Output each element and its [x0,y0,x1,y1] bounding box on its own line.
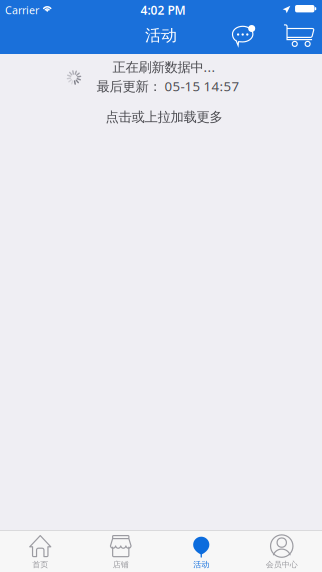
staticText: 点击或上拉加载更多 [105,109,222,125]
staticText: 会员中心 [266,560,298,569]
button[interactable]: 购物车 [278,19,322,52]
button[interactable]: 店铺 [80,530,161,572]
button[interactable]: 活动 [161,530,241,572]
staticText: 正在刷新数据中... [112,58,215,76]
staticText: 活动 [193,560,209,569]
staticText: 首页 [32,560,48,569]
staticText: Carrier [5,3,39,17]
button[interactable]: 会员中心 [241,530,322,572]
staticText: 4:02 PM [140,2,185,18]
staticText: 店铺 [113,560,129,569]
button[interactable]: 首页 [0,530,80,572]
staticText: 最后更新： 05-15 14:57 [96,77,239,95]
staticText: 活动 [145,26,177,45]
button[interactable]: 消息 [226,19,260,51]
